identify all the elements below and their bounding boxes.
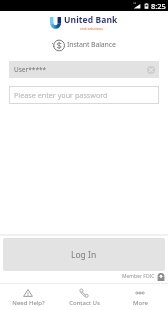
button[interactable]: Please enter your password xyxy=(9,86,159,104)
staticText: Need Help? xyxy=(12,299,45,307)
staticText: User***** xyxy=(14,65,47,74)
staticText: Log In xyxy=(71,249,97,261)
button[interactable]: Contact Us xyxy=(56,284,112,310)
staticText: Member FDIC xyxy=(122,273,155,280)
button[interactable]: Log In xyxy=(3,238,165,271)
staticText: Please enter your password xyxy=(14,90,108,100)
button[interactable]: Clear username xyxy=(147,66,155,74)
button[interactable]: User***** xyxy=(9,61,159,78)
staticText: Instant Balance xyxy=(67,40,116,50)
staticText: Contact Us xyxy=(69,299,100,307)
button[interactable]: Instant Balance xyxy=(0,38,168,52)
staticText: 8:25 xyxy=(151,1,166,11)
button[interactable]: More xyxy=(112,284,168,310)
staticText: More xyxy=(133,299,148,307)
staticText: United Bank xyxy=(64,14,118,26)
button[interactable]: Need Help? xyxy=(0,284,56,310)
staticText: real solutions xyxy=(80,26,103,31)
